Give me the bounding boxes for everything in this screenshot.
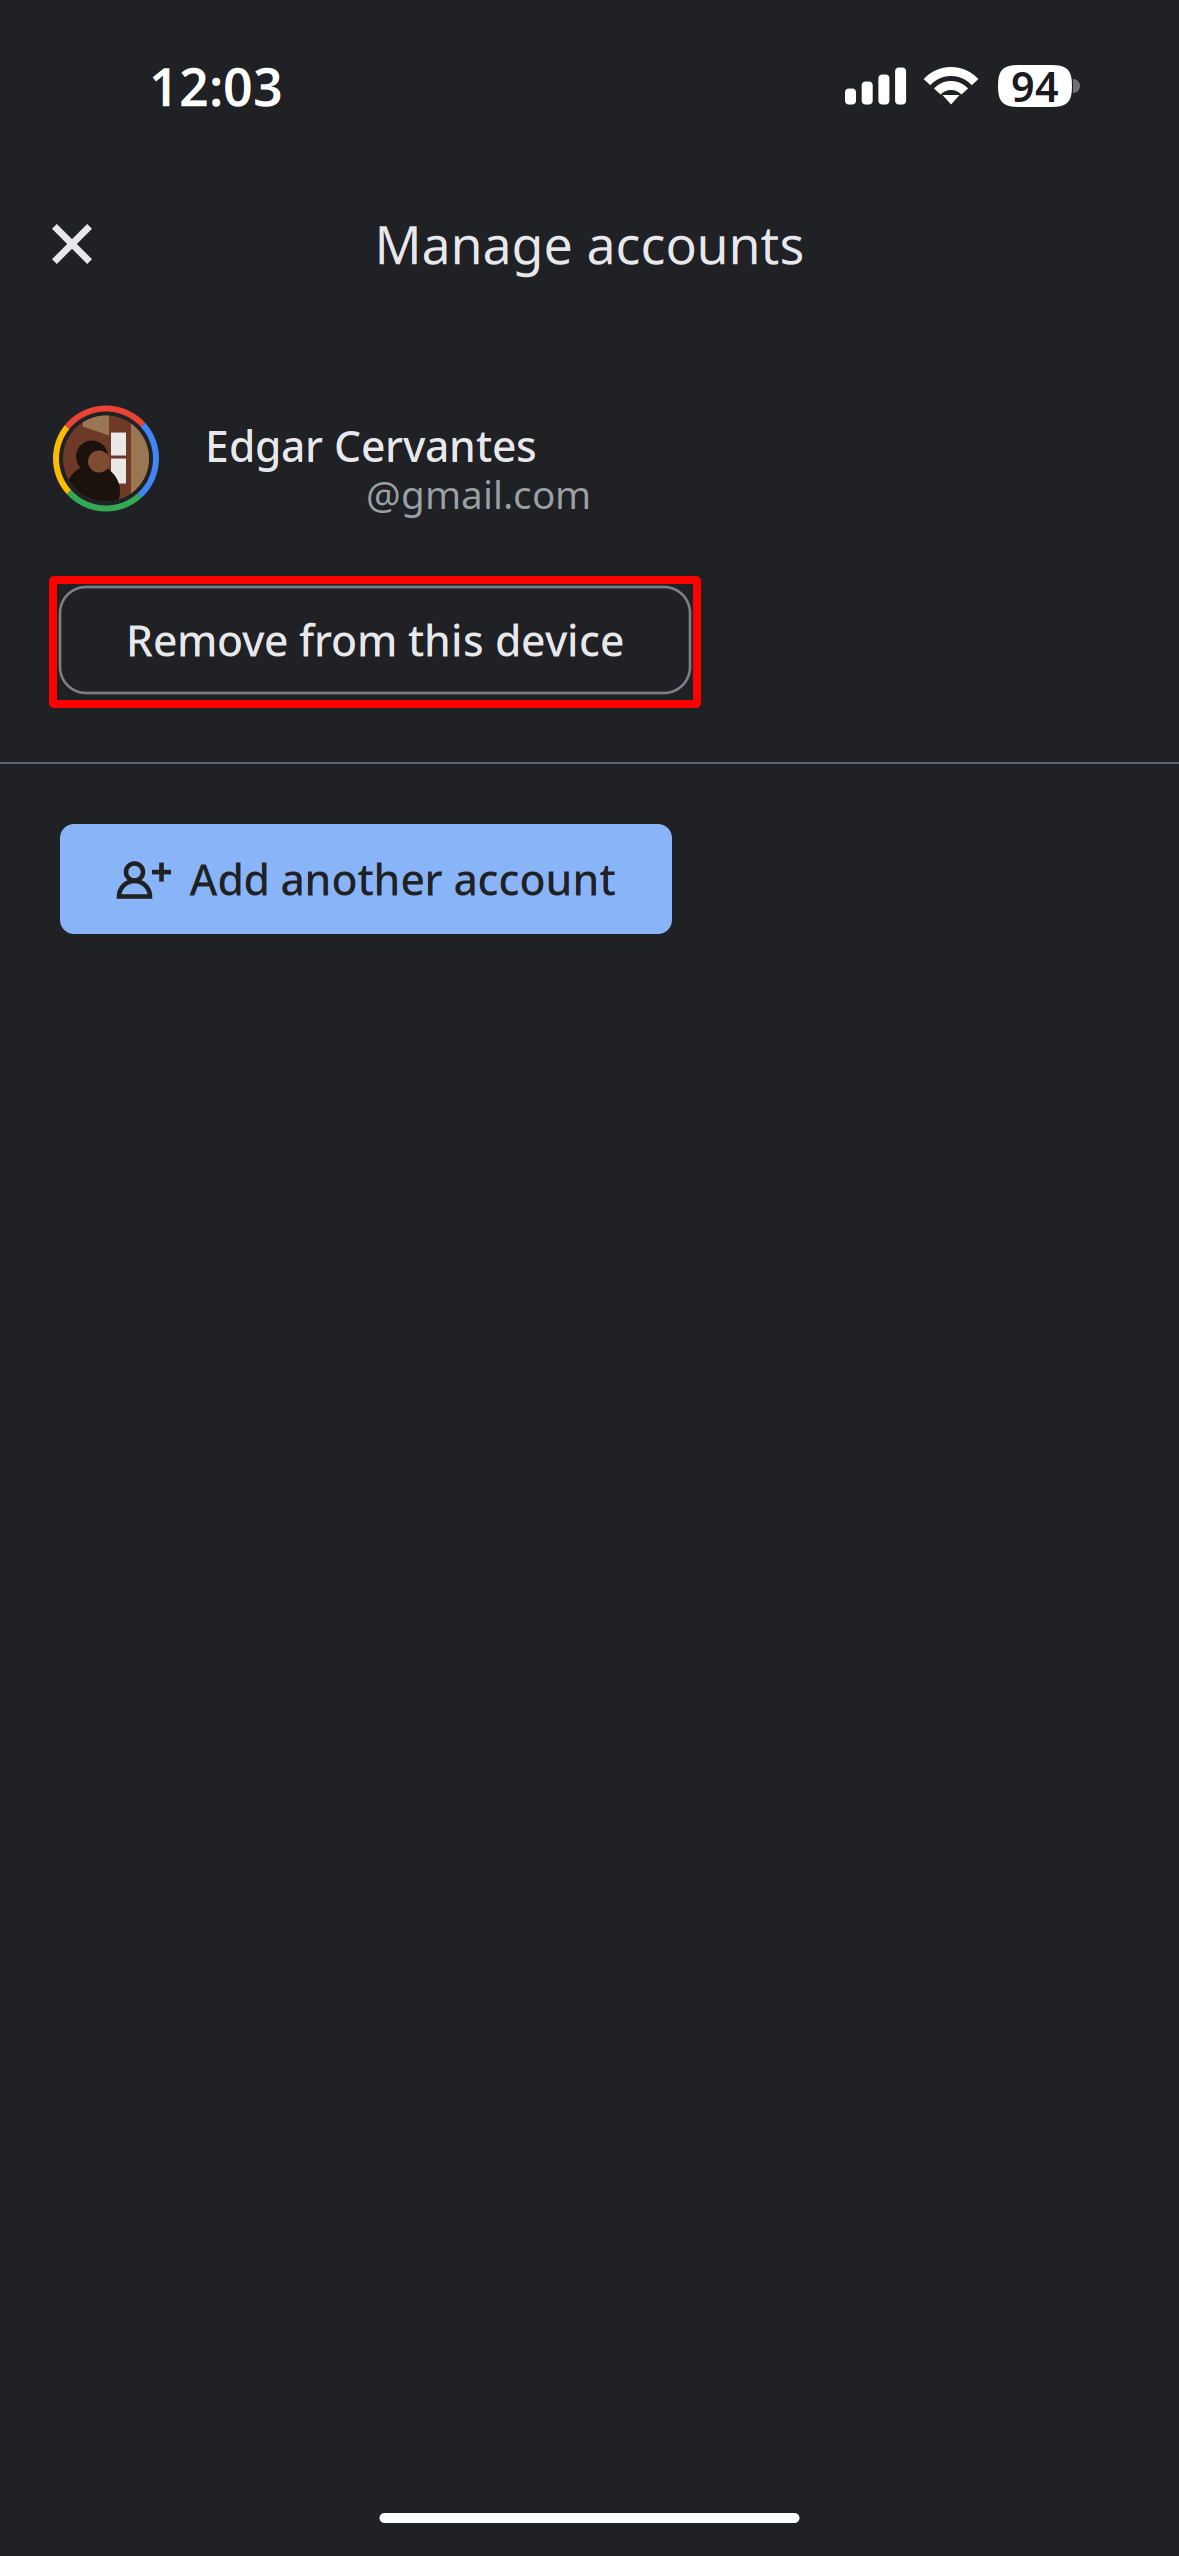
staticText: Add another account: [189, 851, 615, 907]
button[interactable]: Add another account: [60, 824, 672, 934]
staticText: Manage accounts: [374, 209, 804, 279]
staticText: Remove from this device: [126, 612, 624, 668]
button[interactable]: Close: [22, 194, 122, 294]
staticText: @gmail.com: [366, 468, 591, 520]
button[interactable]: Remove from this device: [60, 587, 690, 693]
staticText: 12:03: [149, 51, 283, 121]
staticText: 94: [1011, 59, 1059, 113]
staticText: Edgar Cervantes: [205, 417, 537, 474]
